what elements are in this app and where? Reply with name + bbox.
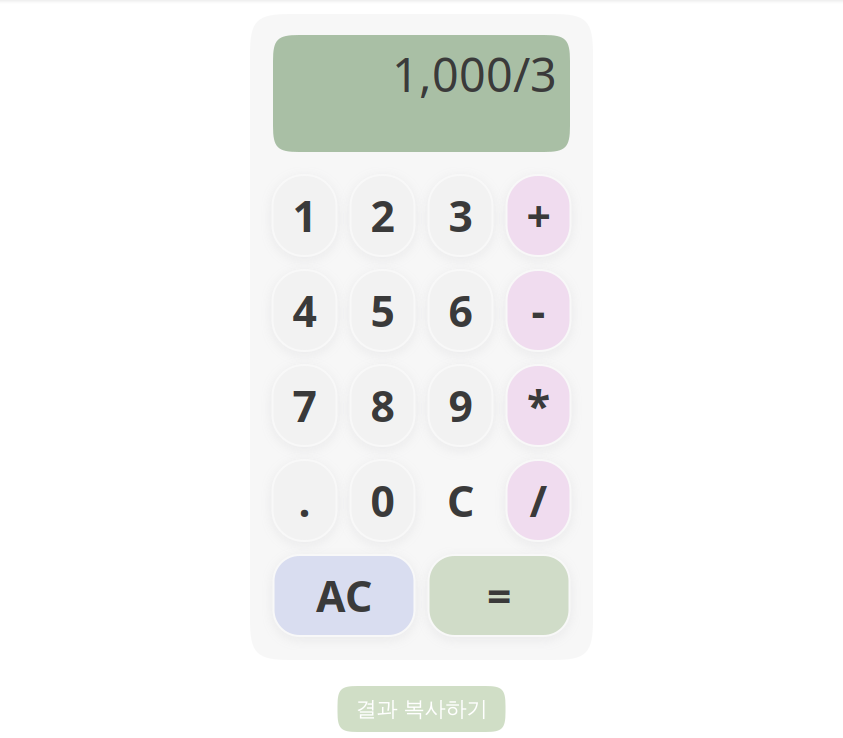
staticText: + — [526, 187, 550, 244]
button[interactable]: 6 — [429, 271, 491, 350]
staticText: 9 — [448, 377, 472, 434]
button[interactable]: 결과 복사하기 — [337, 686, 505, 732]
button[interactable]: 4 — [273, 271, 335, 350]
staticText: / — [529, 472, 547, 529]
button[interactable]: Add — [507, 176, 569, 255]
button[interactable]: 8 — [351, 366, 413, 445]
staticText: 1,000/3 — [392, 43, 557, 105]
button[interactable]: Equals — [429, 556, 568, 635]
button[interactable]: 2 — [351, 176, 413, 255]
staticText: C — [447, 472, 474, 529]
button[interactable]: Subtract — [507, 271, 569, 350]
button[interactable]: 7 — [273, 366, 335, 445]
staticText: 6 — [448, 282, 472, 339]
staticText: 3 — [448, 187, 472, 244]
button[interactable]: 5 — [351, 271, 413, 350]
staticText: 1 — [292, 187, 316, 244]
staticText: 0 — [370, 472, 394, 529]
button[interactable]: Decimal point — [273, 461, 335, 540]
staticText: AC — [316, 567, 372, 624]
staticText: 7 — [292, 377, 316, 434]
staticText: = — [487, 567, 511, 624]
staticText: . — [298, 472, 310, 529]
button[interactable]: All clear — [274, 556, 413, 635]
staticText: 2 — [370, 187, 394, 244]
button[interactable]: 1 — [273, 176, 335, 255]
button[interactable]: Clear entry — [429, 461, 491, 540]
button[interactable]: Divide — [507, 461, 569, 540]
staticText: 5 — [370, 282, 394, 339]
staticText: * — [527, 377, 550, 434]
staticText: 8 — [370, 377, 394, 434]
staticText: 결과 복사하기 — [355, 696, 487, 722]
button[interactable]: Multiply — [507, 366, 569, 445]
staticText: 4 — [292, 282, 316, 339]
button[interactable]: 9 — [429, 366, 491, 445]
button[interactable]: 3 — [429, 176, 491, 255]
staticText: - — [531, 282, 545, 339]
button[interactable]: 0 — [351, 461, 413, 540]
